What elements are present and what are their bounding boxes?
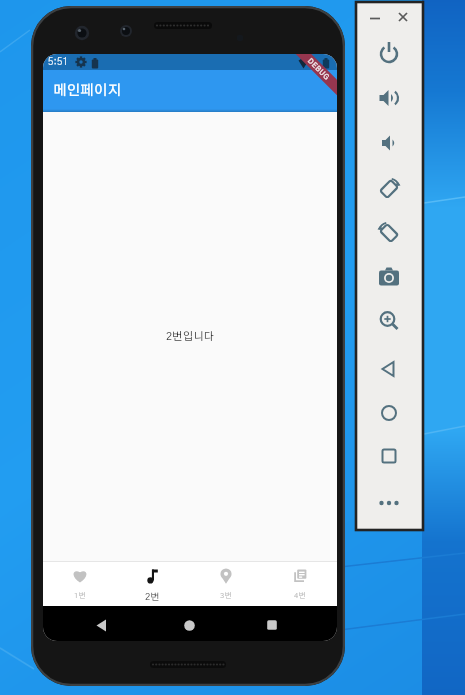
button[interactable]	[393, 7, 413, 27]
button[interactable]: 2번	[116, 562, 189, 606]
staticText: 2번입니다	[166, 331, 215, 342]
button[interactable]	[365, 7, 385, 27]
staticText: 2번	[145, 592, 160, 602]
button[interactable]	[373, 127, 405, 159]
button[interactable]	[173, 609, 205, 641]
button[interactable]	[373, 261, 405, 293]
staticText: 5:51	[48, 57, 69, 67]
staticText: 1번	[74, 592, 86, 600]
button[interactable]: 1번	[43, 562, 116, 606]
button[interactable]	[256, 609, 288, 641]
button[interactable]	[373, 487, 405, 519]
button[interactable]: 4번	[263, 562, 337, 606]
button[interactable]	[373, 397, 405, 429]
button[interactable]	[373, 216, 405, 248]
staticText: 4번	[294, 592, 306, 600]
button[interactable]	[373, 353, 405, 385]
staticText: DEBUG	[307, 57, 331, 82]
button[interactable]	[373, 172, 405, 204]
button[interactable]	[373, 305, 405, 337]
button[interactable]	[373, 440, 405, 472]
button[interactable]	[373, 37, 405, 69]
button[interactable]	[373, 82, 405, 114]
staticText: 메인페이지	[53, 84, 122, 98]
button[interactable]: 3번	[189, 562, 263, 606]
staticText: 3번	[220, 592, 232, 600]
button[interactable]	[85, 609, 117, 641]
